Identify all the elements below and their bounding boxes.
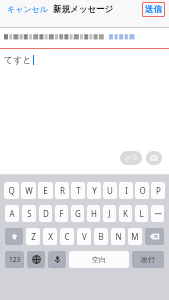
staticText: R [60,185,65,196]
button[interactable]: 送信 [142,2,165,17]
button[interactable]: キャンセル [4,0,51,18]
staticText: S [27,208,32,219]
button[interactable]: Mail [146,151,162,165]
staticText: 改行 [141,255,155,264]
staticText: B [98,231,104,242]
button[interactable]: K [119,205,132,222]
staticText: 新規メッセージ [53,4,114,15]
button[interactable]: D [39,205,52,222]
button[interactable]: Z [26,228,40,245]
staticText: W [25,185,33,196]
staticText: U [107,185,113,196]
staticText: O [139,185,146,196]
staticText: キャンセル [7,4,48,14]
staticText: てすと [4,54,32,65]
button[interactable]: Shift [5,228,23,245]
button[interactable]: U [103,182,117,199]
button[interactable]: J [103,205,116,222]
button[interactable]: A [5,205,19,222]
staticText: C [64,231,70,242]
button[interactable]: 123 [5,251,24,268]
button[interactable]: Y [87,182,101,199]
staticText: Y [92,185,97,196]
staticText: K [123,208,128,219]
staticText: J [108,208,111,219]
button[interactable]: T [71,182,85,199]
staticText: 0 [133,153,138,163]
button[interactable]: H [87,205,100,222]
staticText: 送信 [145,4,162,15]
staticText: N [115,231,122,242]
button[interactable]: L [135,205,148,222]
staticText: Z [31,231,36,242]
button[interactable]: M [128,228,142,245]
staticText: A [9,208,15,219]
button[interactable]: O [135,182,149,199]
button[interactable]: Change language [27,251,45,268]
staticText: V [82,231,87,242]
button[interactable]: Attachments [120,151,142,165]
button[interactable]: N [111,228,125,245]
button[interactable]: R [55,182,69,199]
button[interactable]: I [119,182,133,199]
button[interactable]: C [60,228,74,245]
staticText: M [131,231,139,242]
staticText: ー [154,209,162,219]
staticText: Q [8,185,15,196]
button[interactable]: F [55,205,68,222]
button[interactable]: B [94,228,108,245]
button[interactable]: ー [151,205,164,222]
button[interactable]: Delete [145,228,164,245]
button[interactable]: X [43,228,57,245]
staticText: 空白 [92,255,106,264]
button[interactable]: V [77,228,91,245]
staticText: X [48,231,53,242]
button[interactable]: 改行 [132,251,164,268]
staticText: D [43,208,49,219]
staticText: P [156,185,161,196]
staticText: G [75,208,81,219]
button[interactable]: E [38,182,53,199]
staticText: E [43,185,48,196]
staticText: 123 [9,255,21,264]
button[interactable]: G [71,205,84,222]
button[interactable]: Q [4,182,19,199]
staticText: H [91,208,97,219]
button[interactable]: 空白 [69,251,129,268]
button[interactable]: W [21,182,36,199]
staticText: F [59,208,64,219]
button[interactable]: P [151,182,165,199]
staticText: L [139,208,144,219]
staticText: T [76,185,81,196]
button[interactable]: Dictation [48,251,66,268]
button[interactable]: S [22,205,36,222]
staticText: I [125,185,128,196]
